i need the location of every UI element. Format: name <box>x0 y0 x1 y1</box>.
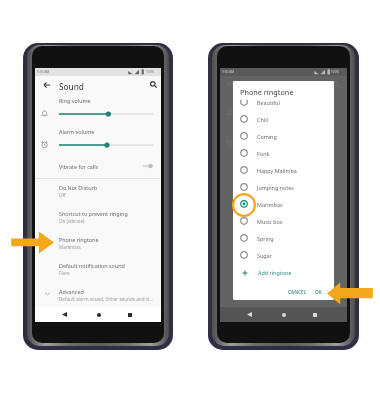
button[interactable]: Back <box>38 76 55 93</box>
staticText: Advanced <box>59 288 84 295</box>
staticText: Funk <box>257 150 270 157</box>
button[interactable]: Back <box>58 307 71 322</box>
button[interactable]: Do Not Disturb <box>35 184 161 208</box>
button[interactable]: Advanced <box>35 288 161 312</box>
staticText: 9:30 AM <box>222 70 235 74</box>
staticText: Default notification sound <box>59 262 125 269</box>
staticText: Default alarm sound, Other sounds and vi… <box>59 296 153 302</box>
button[interactable]: Home <box>92 307 105 322</box>
button[interactable]: Alarm volume <box>35 128 161 152</box>
button[interactable]: Ring volume <box>35 97 161 121</box>
button[interactable]: Recent apps <box>123 307 136 322</box>
staticText: 9:30 AM <box>37 70 50 74</box>
button[interactable]: Beautiful <box>233 100 334 110</box>
staticText: Add ringtone <box>258 269 292 276</box>
button[interactable]: Spring <box>233 233 334 246</box>
button[interactable]: Sugar <box>233 250 334 263</box>
button[interactable]: Search <box>145 76 161 93</box>
button[interactable]: Marimbas <box>233 199 334 212</box>
staticText: Coming <box>257 133 277 140</box>
button[interactable]: Default notification sound <box>35 262 161 286</box>
staticText: OK <box>315 289 322 296</box>
button[interactable]: Chill <box>233 114 334 127</box>
staticText: 100% <box>146 70 155 74</box>
staticText: Spring <box>257 235 274 242</box>
staticText: 100% <box>331 70 340 74</box>
button[interactable]: Music box <box>233 216 334 229</box>
staticText: Sugar <box>257 252 272 259</box>
staticText: Ring volume <box>59 97 91 104</box>
staticText: Flare <box>59 270 70 276</box>
staticText: Shortcut to prevent ringing <box>59 210 128 217</box>
staticText: CANCEL <box>288 289 307 296</box>
staticText: Sound <box>59 81 84 92</box>
button[interactable]: Jumping notes <box>233 182 334 195</box>
staticText: Chill <box>257 116 268 123</box>
staticText: Marimbas <box>257 201 283 208</box>
staticText: Marimbas <box>59 244 81 250</box>
button[interactable]: Funk <box>233 148 334 161</box>
button[interactable]: Coming <box>233 131 334 144</box>
staticText: Off <box>59 192 66 198</box>
staticText: Phone ringtone <box>240 87 294 97</box>
staticText: Music box <box>257 218 283 225</box>
button[interactable]: Phone ringtone <box>35 236 161 260</box>
button[interactable]: Back <box>243 307 256 322</box>
staticText: Happy Malimba <box>257 167 297 174</box>
button[interactable]: CANCEL <box>283 287 311 297</box>
staticText: Vibrate for calls <box>59 163 99 170</box>
button[interactable]: Recent apps <box>308 307 321 322</box>
button[interactable]: Happy Malimba <box>233 165 334 178</box>
button[interactable]: Add ringtone <box>233 266 334 279</box>
staticText: On (vibrate) <box>59 218 85 224</box>
staticText: Alarm volume <box>59 128 95 135</box>
button[interactable]: Home <box>277 307 290 322</box>
other: Pointer arrow <box>326 282 374 305</box>
staticText: Jumping notes <box>257 184 294 191</box>
button[interactable]: Vibrate for calls <box>35 158 161 174</box>
button[interactable]: OK <box>310 287 326 297</box>
staticText: Beautiful <box>257 100 280 106</box>
button[interactable]: Shortcut to prevent ringing <box>35 210 161 234</box>
staticText: Do Not Disturb <box>59 184 98 191</box>
staticText: Phone ringtone <box>59 236 99 243</box>
other: Pointer arrow <box>10 231 55 254</box>
